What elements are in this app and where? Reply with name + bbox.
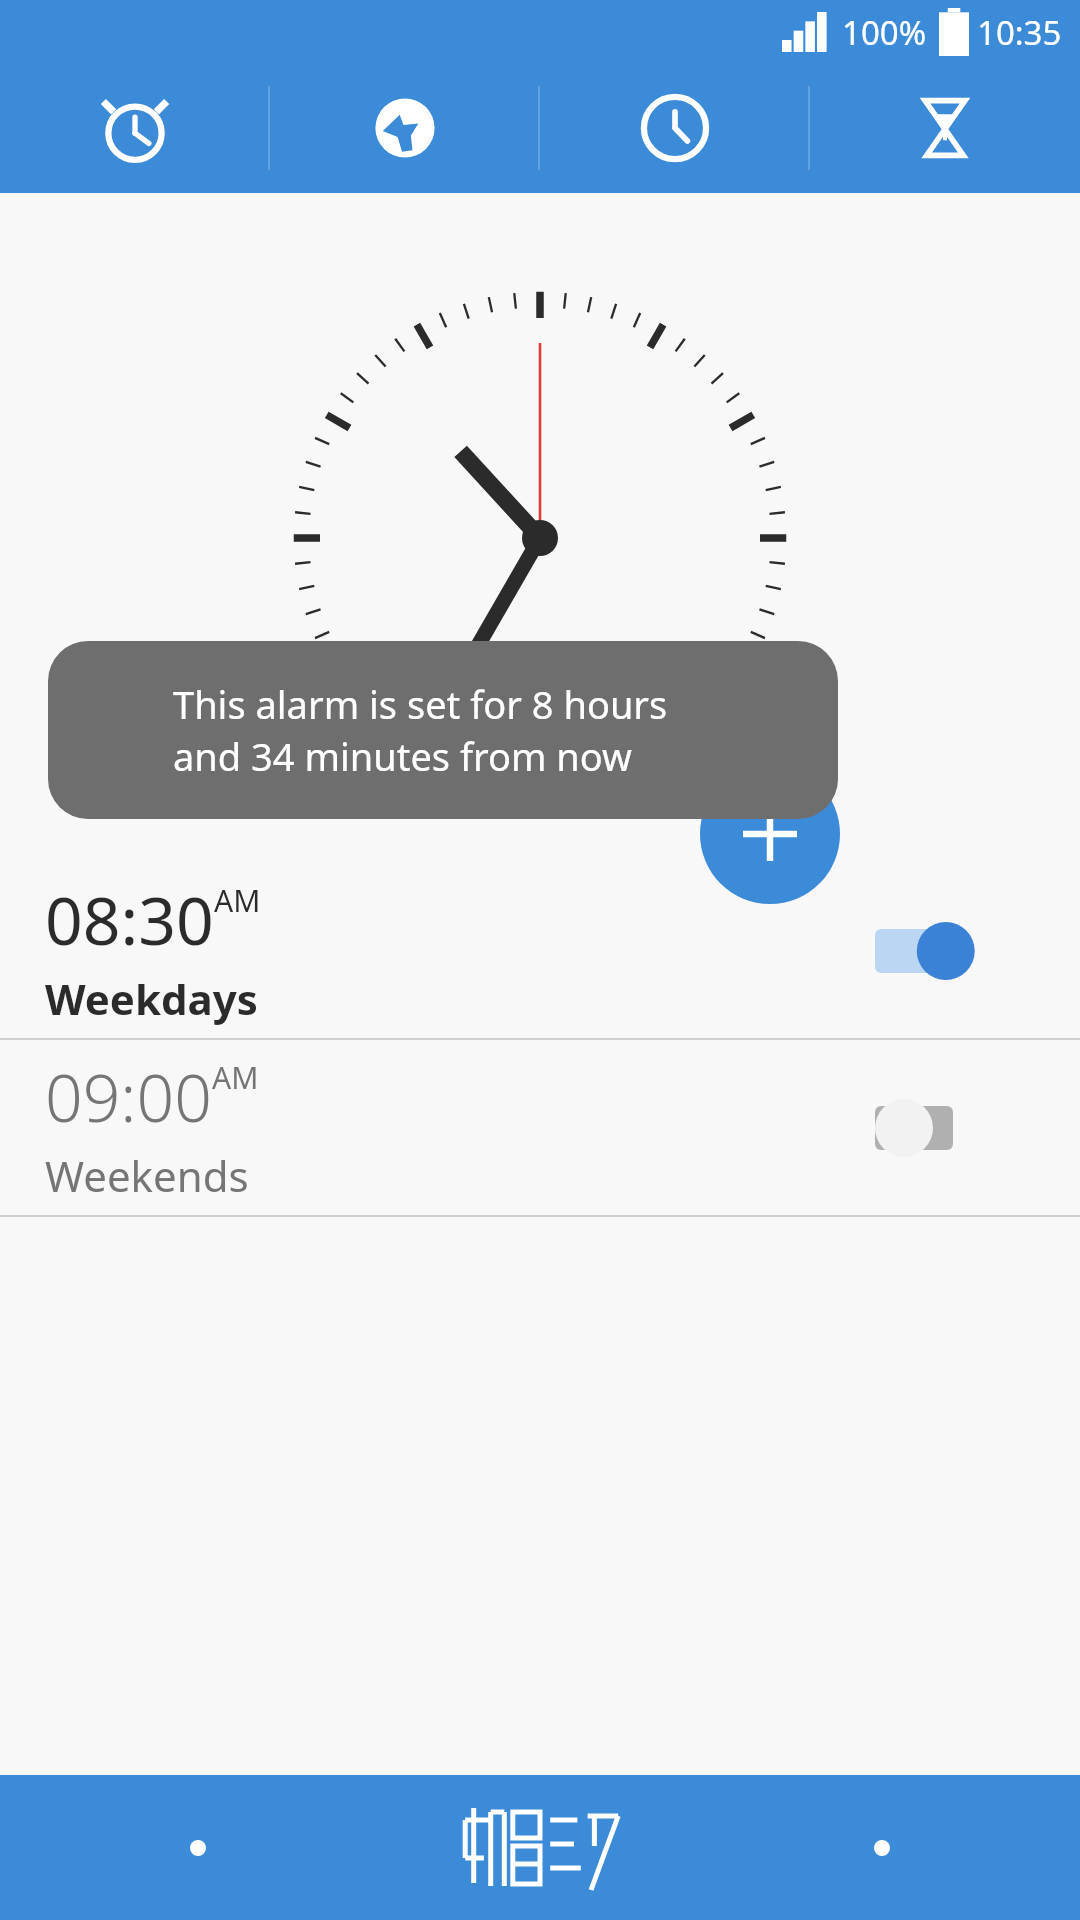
staticText: Weekdays: [45, 970, 258, 1027]
staticText: 09:00: [45, 1051, 212, 1141]
button[interactable]: Alarm: [0, 63, 270, 193]
button[interactable]: 08:30: [0, 863, 1080, 1038]
button[interactable]: Home: [445, 1793, 635, 1903]
staticText: This alarm is set for 8 hours and 34 min…: [173, 678, 713, 782]
button[interactable]: Toggle Weekends alarm: [875, 1083, 1025, 1173]
button[interactable]: Recents: [862, 1828, 902, 1868]
button[interactable]: 09:00: [0, 1040, 1080, 1215]
button[interactable]: Stopwatch: [540, 63, 810, 193]
staticText: AM: [214, 880, 261, 921]
staticText: 10:35: [977, 10, 1062, 55]
button[interactable]: Add alarm: [700, 764, 840, 904]
staticText: Weekends: [45, 1147, 249, 1204]
staticText: 100%: [842, 10, 927, 55]
button[interactable]: Timer: [810, 63, 1080, 193]
button[interactable]: Toggle Weekdays alarm: [875, 906, 1025, 996]
staticText: AM: [212, 1057, 259, 1098]
button[interactable]: World clock: [270, 63, 540, 193]
staticText: 08:30: [45, 874, 214, 964]
button[interactable]: Back: [178, 1828, 218, 1868]
